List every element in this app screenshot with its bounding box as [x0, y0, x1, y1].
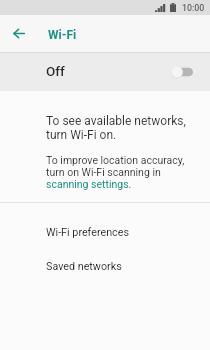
staticText: 10:00	[182, 3, 205, 13]
staticText: To improve location accuracy, turn on Wi…	[46, 155, 185, 191]
button[interactable]: Wi-Fi preferences	[0, 203, 210, 238]
staticText: Wi-Fi preferences	[46, 226, 129, 238]
staticText: Wi-Fi	[48, 28, 77, 42]
staticText: Off	[46, 63, 65, 79]
button[interactable]: Off	[0, 52, 210, 91]
staticText: Saved networks	[46, 260, 122, 273]
button[interactable]: Saved networks	[0, 238, 210, 273]
staticText: To see available networks, turn Wi-Fi on…	[46, 114, 186, 142]
button[interactable]: Back	[0, 15, 38, 52]
